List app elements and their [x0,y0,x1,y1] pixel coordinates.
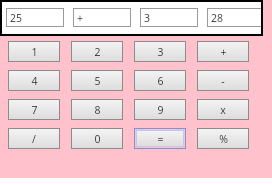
staticText: + [77,11,84,25]
staticText: x [220,103,226,117]
button[interactable]: 5 [71,70,123,91]
staticText: 9 [157,103,164,117]
button[interactable]: 2 [71,41,123,62]
staticText: % [219,132,228,146]
button[interactable]: 9 [134,99,186,120]
staticText: 8 [94,103,101,117]
staticText: 3 [144,11,151,25]
button[interactable]: 0 [71,128,123,149]
staticText: 7 [31,103,38,117]
staticText: 4 [31,74,38,88]
staticText: 0 [94,132,101,146]
staticText: / [32,132,36,146]
button[interactable]: 3 [134,41,186,62]
staticText: + [220,45,227,59]
button[interactable]: 8 [71,99,123,120]
button[interactable]: - [197,70,249,91]
staticText: 1 [31,45,38,59]
button[interactable]: = [134,128,186,149]
staticText: 3 [157,45,164,59]
button[interactable]: / [8,128,60,149]
staticText: 6 [157,74,164,88]
button[interactable]: 6 [134,70,186,91]
button[interactable]: 4 [8,70,60,91]
staticText: = [157,132,164,146]
button[interactable]: 3 [140,8,198,27]
staticText: 5 [94,74,101,88]
button[interactable]: 28 [207,8,263,27]
button[interactable]: + [197,41,249,62]
button[interactable]: x [197,99,249,120]
button[interactable]: 25 [6,8,64,27]
button[interactable]: 1 [8,41,60,62]
staticText: - [221,74,225,88]
staticText: 25 [10,11,23,25]
staticText: 2 [94,45,101,59]
button[interactable]: 7 [8,99,60,120]
staticText: 28 [211,11,224,25]
button[interactable]: + [73,8,131,27]
button[interactable]: % [197,128,249,149]
